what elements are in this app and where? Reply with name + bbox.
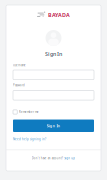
staticText: Remember me xyxy=(19,110,39,114)
staticText: Sign up xyxy=(64,156,75,160)
button[interactable]: Remember me xyxy=(13,109,94,114)
staticText: Username xyxy=(13,63,26,67)
button[interactable]: Need help signing in? xyxy=(13,137,94,141)
staticText: Don't have an account? xyxy=(32,156,63,160)
staticText: Sign In xyxy=(45,50,62,58)
button[interactable]: Sign In xyxy=(13,119,94,132)
staticText: BAYADA xyxy=(48,11,70,19)
button[interactable]: Sign up xyxy=(64,156,75,160)
staticText: Password xyxy=(13,83,25,87)
staticText: Need help signing in? xyxy=(13,137,46,141)
staticText: Sign In xyxy=(46,123,60,128)
